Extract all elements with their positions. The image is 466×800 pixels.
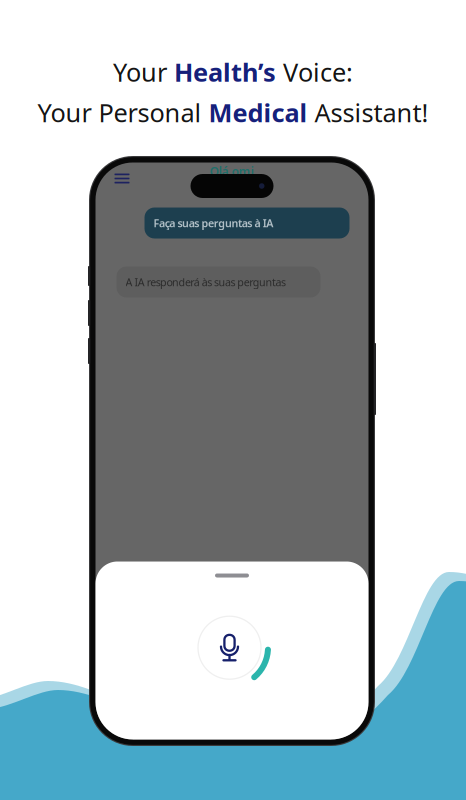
staticText: Faça suas perguntas à IA <box>153 216 273 230</box>
staticText: Your Personal <box>37 96 208 129</box>
staticText: Voice: <box>283 55 353 89</box>
button[interactable]: Record voice question <box>198 616 261 679</box>
staticText: Health’s <box>174 55 283 89</box>
staticText: A IA responderá às suas perguntas <box>125 275 286 289</box>
staticText: Olá omi <box>210 163 254 179</box>
staticText: Medical <box>208 96 314 129</box>
staticText: Assistant! <box>314 96 428 129</box>
staticText: Your <box>113 55 174 89</box>
button[interactable]: Menu <box>110 169 133 187</box>
